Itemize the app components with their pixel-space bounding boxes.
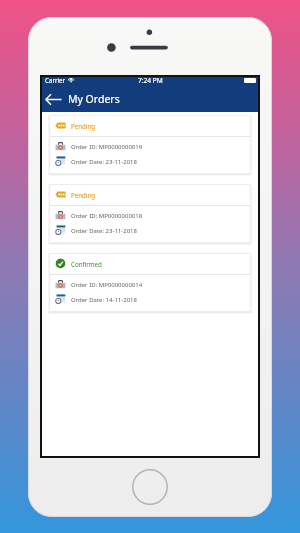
- staticText: Order ID: MP0000000019: [71, 143, 143, 151]
- button[interactable]: Pending: [49, 115, 251, 174]
- staticText: Carrier: [45, 76, 66, 84]
- staticText: Order Date: 14-11-2018: [71, 296, 137, 304]
- staticText: Confirmed: [71, 260, 102, 268]
- staticText: Pending: [71, 122, 96, 130]
- staticText: My Orders: [68, 92, 120, 106]
- button[interactable]: Confirmed: [49, 253, 251, 312]
- staticText: Order Date: 23-11-2018: [71, 227, 137, 235]
- button[interactable]: Back: [43, 89, 63, 109]
- staticText: Order ID: MP0000000018: [71, 212, 143, 220]
- staticText: Order ID: MP0000000014: [71, 281, 143, 289]
- staticText: 7:24 PM: [138, 76, 163, 85]
- staticText: Order Date: 23-11-2018: [71, 158, 137, 166]
- staticText: Pending: [71, 191, 96, 199]
- button[interactable]: Pending: [49, 184, 251, 243]
